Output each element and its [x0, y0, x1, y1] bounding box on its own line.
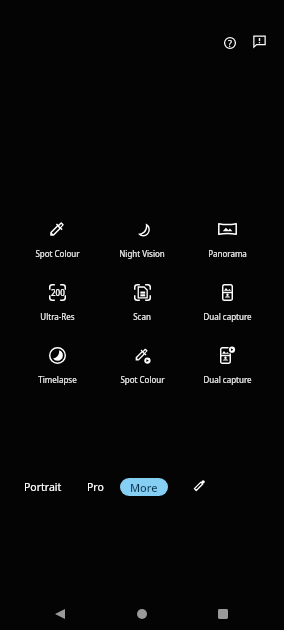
staticText: ?: [228, 37, 232, 49]
staticText: Panorama: [208, 248, 247, 259]
staticText: Night Vision: [119, 248, 165, 259]
button[interactable]: Dual capture: [185, 346, 269, 389]
staticText: Dual capture: [203, 311, 252, 322]
button[interactable]: Spot Colour: [15, 220, 99, 263]
button[interactable]: Scan: [100, 283, 184, 326]
button[interactable]: 200: [15, 283, 99, 326]
staticText: Scan: [133, 311, 151, 322]
button[interactable]: More: [120, 478, 168, 496]
button[interactable]: Portrait: [24, 480, 62, 494]
button[interactable]: Pro: [87, 480, 104, 494]
button[interactable]: Edit modes: [188, 475, 210, 495]
button[interactable]: Recent apps: [211, 602, 235, 626]
staticText: Portrait: [24, 480, 62, 494]
staticText: Ultra-Res: [40, 311, 75, 322]
button[interactable]: Timelapse: [15, 346, 99, 389]
button[interactable]: Dual capture: [185, 283, 269, 326]
staticText: Dual capture: [203, 374, 252, 385]
button[interactable]: Spot Colour: [100, 346, 184, 389]
button[interactable]: Help: [217, 30, 243, 56]
staticText: Spot Colour: [120, 374, 165, 385]
button[interactable]: Back: [48, 602, 72, 626]
button[interactable]: Home: [130, 602, 154, 626]
staticText: More: [130, 480, 158, 495]
staticText: Timelapse: [38, 374, 77, 385]
button[interactable]: Night Vision: [100, 220, 184, 263]
button[interactable]: Send feedback: [246, 28, 272, 54]
staticText: Pro: [87, 480, 104, 494]
staticText: Spot Colour: [35, 248, 80, 259]
staticText: 200: [51, 287, 65, 298]
button[interactable]: Panorama: [185, 220, 269, 263]
